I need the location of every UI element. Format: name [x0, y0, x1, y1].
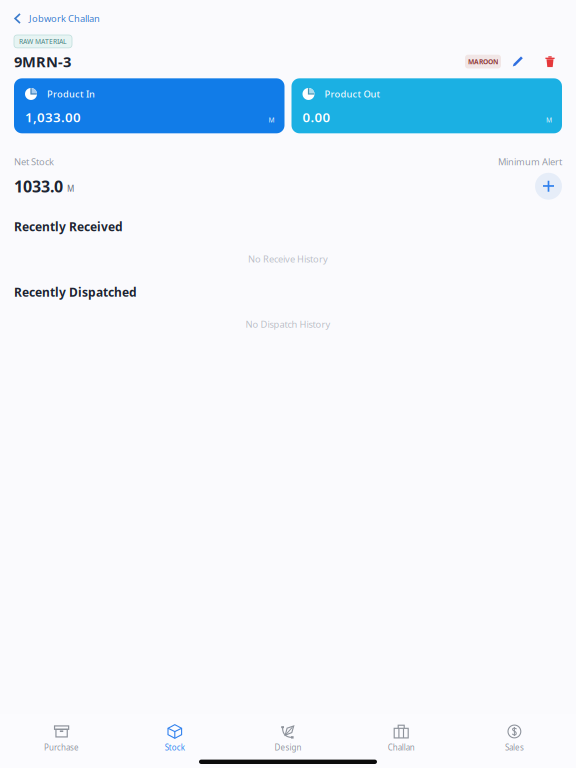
button[interactable]: Add minimum alert: [535, 173, 562, 200]
button[interactable]: Delete: [524, 56, 555, 67]
staticText: RAW MATERIAL: [19, 37, 67, 46]
button[interactable]: Product Out: [291, 78, 562, 133]
button[interactable]: Jobwork Challan: [0, 0, 100, 31]
button[interactable]: Stock: [118, 714, 231, 758]
staticText: Net Stock: [14, 155, 54, 168]
staticText: 1,033.00: [25, 108, 81, 126]
button[interactable]: Product In: [14, 78, 284, 133]
staticText: Stock: [165, 742, 185, 753]
staticText: Product In: [47, 88, 95, 100]
staticText: 0.00: [302, 108, 330, 126]
button[interactable]: Sales: [458, 714, 571, 758]
staticText: M: [546, 115, 552, 124]
button[interactable]: Challan: [345, 714, 458, 758]
button[interactable]: Edit: [501, 56, 524, 67]
staticText: 1033.0: [14, 176, 63, 197]
staticText: No Dispatch History: [245, 318, 330, 330]
staticText: No Receive History: [248, 253, 328, 265]
button[interactable]: Purchase: [5, 714, 118, 758]
staticText: Product Out: [324, 88, 380, 100]
staticText: MAROON: [468, 57, 498, 66]
staticText: Purchase: [44, 742, 79, 753]
staticText: 9MRN-3: [14, 52, 71, 71]
staticText: Sales: [505, 742, 524, 753]
staticText: Design: [274, 742, 301, 753]
staticText: Recently Received: [14, 219, 123, 235]
staticText: Recently Dispatched: [14, 284, 137, 300]
button[interactable]: Design: [231, 714, 345, 758]
staticText: M: [67, 183, 74, 194]
staticText: Minimum Alert: [498, 155, 562, 168]
staticText: M: [268, 115, 274, 124]
staticText: Jobwork Challan: [29, 12, 100, 25]
staticText: Challan: [388, 742, 415, 753]
